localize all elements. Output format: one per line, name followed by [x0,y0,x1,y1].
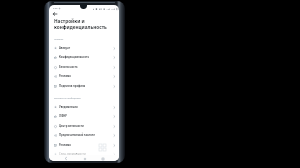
button[interactable]: Уведомления [49,102,119,112]
button[interactable]: Подписка профиля [49,81,119,91]
staticText: Реклама [59,143,71,147]
staticText: Спец. возможности [59,152,86,156]
button[interactable]: Реклама [49,140,119,150]
button[interactable]: Back [52,11,58,17]
staticText: Аккаунт [54,37,64,40]
button[interactable]: Спец. возможности [49,149,119,159]
staticText: Предпочитаемый контакт [59,133,95,137]
button[interactable]: Предпочитаемый контакт [49,130,119,140]
button[interactable]: ЛФНР [49,111,119,121]
staticText: Настройки и конфиденциальность [54,18,107,30]
staticText: Уведомления [59,105,78,109]
staticText: 2:56 [53,7,58,10]
staticText: Конфиденциальность [59,55,89,59]
button[interactable]: Recents [100,156,105,161]
button[interactable]: Аккаунт [49,43,119,53]
button[interactable]: QR code [98,143,106,151]
button[interactable]: Реклама [49,71,119,81]
staticText: Аккаунт [59,46,71,50]
button[interactable]: Безопасность [49,62,119,72]
staticText: ЛФНР [59,114,67,118]
button[interactable]: Back [63,156,68,161]
staticText: Безопасность [59,65,78,69]
button[interactable]: Центр активности [49,121,119,131]
staticText: Реклама [59,74,71,78]
staticText: Центр активности [59,124,84,128]
staticText: Контент и сообщения [54,96,81,99]
button[interactable]: Home [82,156,87,161]
button[interactable]: Конфиденциальность [49,52,119,62]
staticText: Подписка профиля [59,84,86,88]
